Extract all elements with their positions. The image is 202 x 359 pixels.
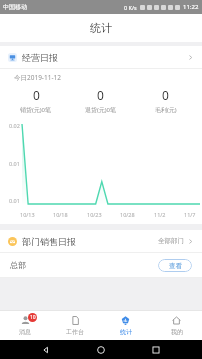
button[interactable]: 我的 [151, 310, 202, 340]
staticText: 销货(元)0笔 [20, 106, 52, 114]
button[interactable]: 查看 [158, 259, 192, 272]
button[interactable]: Recents [147, 341, 165, 359]
staticText: 统计 [90, 21, 112, 35]
staticText: 0 [33, 87, 40, 103]
staticText: 10/23 [87, 211, 102, 218]
staticText: 统计 [120, 328, 132, 336]
staticText: 10 [30, 314, 36, 321]
button[interactable]: 工作台 [50, 310, 100, 340]
staticText: 0.01 [9, 197, 20, 204]
staticText: 0.01 [9, 160, 20, 167]
staticText: 11/2 [154, 211, 166, 218]
staticText: 全部部门 [158, 237, 184, 245]
staticText: 今日2019-11-12 [14, 73, 61, 82]
staticText: 工作台 [66, 328, 84, 336]
staticText: 10/18 [53, 211, 68, 218]
staticText: 中国移动 [3, 3, 27, 11]
button[interactable]: Home [92, 341, 110, 359]
button[interactable]: Back [37, 341, 55, 359]
button[interactable]: 统计 [100, 310, 151, 340]
staticText: 10/28 [120, 211, 135, 218]
staticText: 10/13 [20, 211, 35, 218]
staticText: 消息 [19, 328, 31, 336]
button[interactable]: 部门销售日报 [0, 230, 202, 252]
staticText: 我的 [171, 328, 183, 336]
staticText: 退货(元)0笔 [85, 106, 117, 114]
staticText: 经营日报 [22, 52, 58, 63]
staticText: 查看 [169, 262, 182, 270]
staticText: 0 [162, 87, 169, 103]
staticText: 毛利(元) [155, 106, 177, 114]
staticText: 0 K/s [124, 4, 137, 11]
staticText: 11:22 [183, 3, 199, 11]
staticText: 0.02 [9, 122, 20, 129]
staticText: 部门销售日报 [22, 236, 76, 247]
button[interactable]: 10 [0, 310, 50, 340]
staticText: 0 [97, 87, 104, 103]
button[interactable]: 经营日报 [0, 46, 202, 68]
staticText: 11/7 [184, 211, 196, 218]
staticText: 总部 [10, 260, 26, 270]
